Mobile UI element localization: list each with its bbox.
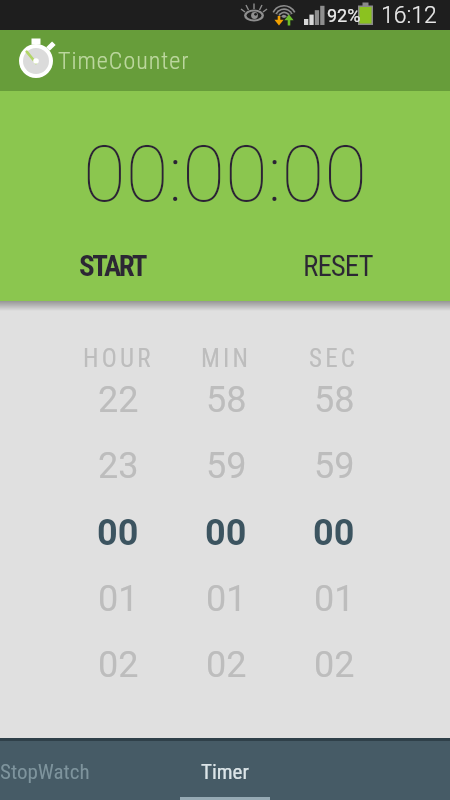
staticText: HOUR (83, 344, 154, 373)
staticText: 22 (98, 379, 139, 421)
staticText: StopWatch (0, 760, 90, 785)
staticText: 00 (205, 512, 247, 554)
staticText: 00 (97, 512, 139, 554)
staticText: 92% (327, 5, 361, 26)
button[interactable]: 01 (64, 574, 172, 624)
staticText: 02 (98, 644, 139, 686)
staticText: 00 (313, 512, 355, 554)
staticText: SEC (309, 344, 359, 373)
button[interactable]: START (0, 243, 225, 289)
button[interactable]: 00 (280, 508, 388, 558)
button[interactable]: 02 (64, 640, 172, 690)
button[interactable]: 58 (172, 375, 280, 425)
button[interactable]: 59 (172, 441, 280, 491)
staticText: Timer (201, 760, 249, 785)
staticText: 59 (314, 445, 355, 487)
staticText: 01 (314, 578, 355, 620)
button[interactable]: 01 (172, 574, 280, 624)
staticText: 01 (98, 578, 139, 620)
button[interactable]: Timer (135, 741, 315, 800)
staticText: 00:00:00 (83, 129, 367, 220)
staticText: 58 (314, 379, 355, 421)
staticText: 02 (314, 644, 355, 686)
button[interactable]: 59 (280, 441, 388, 491)
staticText: 02 (206, 644, 247, 686)
staticText: 58 (206, 379, 247, 421)
button[interactable]: StopWatch (0, 741, 135, 800)
button[interactable]: 02 (280, 640, 388, 690)
button[interactable]: 23 (64, 441, 172, 491)
staticText: 23 (98, 445, 139, 487)
staticText: TimeCounter (58, 47, 190, 75)
button[interactable]: RESET (225, 243, 450, 289)
staticText: 59 (206, 445, 247, 487)
button[interactable]: 00 (64, 508, 172, 558)
button[interactable]: 58 (280, 375, 388, 425)
staticText: START (79, 249, 146, 283)
button[interactable]: 00 (172, 508, 280, 558)
staticText: MIN (201, 344, 252, 373)
staticText: 01 (206, 578, 247, 620)
button[interactable]: 02 (172, 640, 280, 690)
button[interactable]: 01 (280, 574, 388, 624)
staticText: RESET (303, 249, 373, 283)
staticText: 16:12 (381, 2, 437, 29)
button[interactable]: 22 (64, 375, 172, 425)
